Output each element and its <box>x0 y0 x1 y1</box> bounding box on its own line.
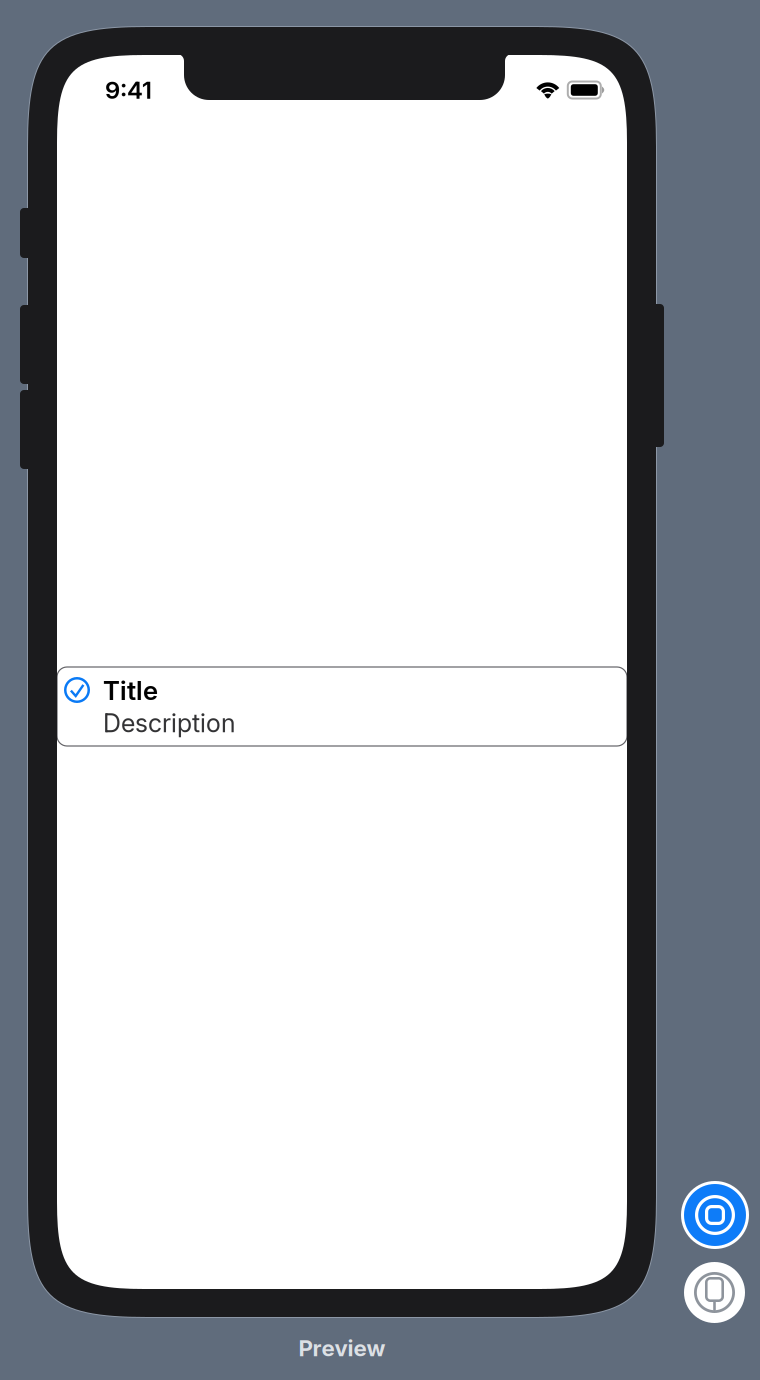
button[interactable]: Live preview <box>681 1181 749 1249</box>
button[interactable]: Title <box>57 667 627 746</box>
button[interactable]: Select device <box>684 1262 745 1323</box>
staticText: Title <box>103 675 158 706</box>
staticText: Preview <box>298 1334 385 1361</box>
staticText: Description <box>103 708 236 738</box>
staticText: 9:41 <box>105 75 152 104</box>
